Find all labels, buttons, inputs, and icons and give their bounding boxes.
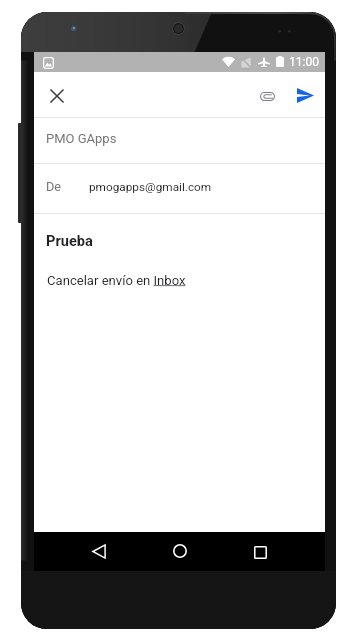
button[interactable]: Attach file [250, 79, 284, 113]
staticText: 11:00 [289, 55, 320, 69]
button[interactable]: Send [288, 78, 322, 112]
button[interactable] [34, 118, 325, 163]
button[interactable]: Back [82, 534, 116, 568]
button[interactable]: Home [163, 534, 197, 568]
staticText: Cancelar envío en Inbox [47, 273, 186, 288]
button[interactable]: Close [40, 79, 74, 113]
button[interactable]: Recents [243, 535, 277, 569]
staticText: De [46, 179, 62, 194]
button[interactable] [34, 164, 325, 213]
staticText: Prueba [46, 232, 93, 249]
staticText: pmogapps@gmail.com [89, 180, 212, 194]
staticText: PMO GApps [46, 131, 117, 146]
